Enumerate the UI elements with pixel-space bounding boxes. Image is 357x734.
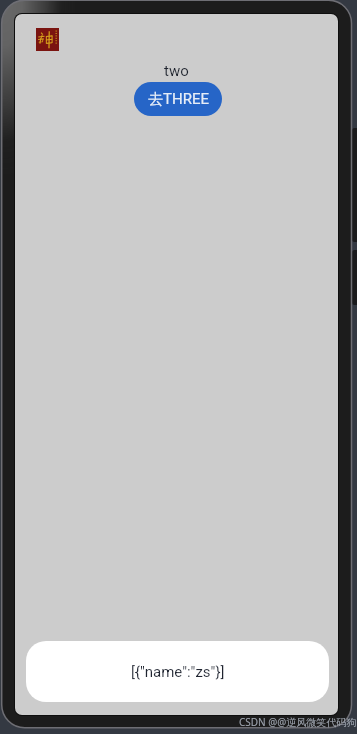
staticText: CSDN @@逆风微笑代码狗 [239,715,357,729]
button[interactable]: 去THREE [134,82,222,116]
other: App icon [36,28,59,51]
button[interactable]: [{"name":"zs"}] [26,641,329,702]
staticText: two [164,62,189,80]
staticText: 去THREE [148,90,209,109]
staticText: [{"name":"zs"}] [131,663,225,681]
